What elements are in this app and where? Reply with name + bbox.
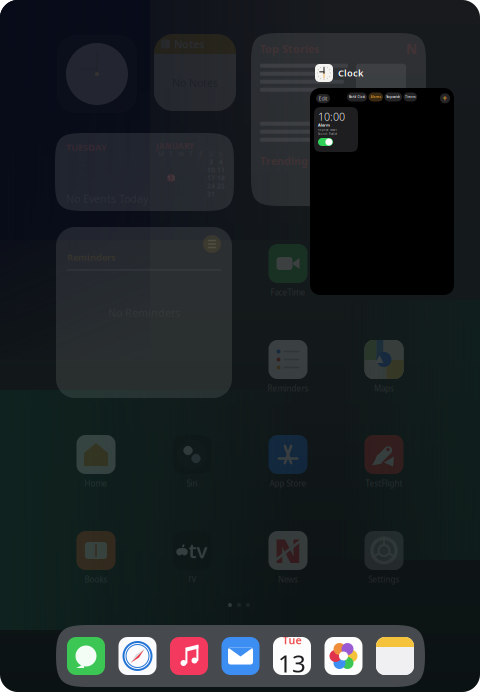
button[interactable]: N — [253, 531, 323, 585]
staticText: 13 — [167, 174, 175, 182]
button[interactable]: Books — [61, 531, 131, 585]
staticText: tv — [188, 537, 207, 564]
button[interactable]: Home — [61, 435, 131, 489]
staticText: Books — [84, 574, 107, 585]
button[interactable]: World Clock — [347, 92, 367, 101]
button[interactable]: Siri — [157, 435, 227, 489]
staticText: TestFlight — [365, 478, 402, 489]
button[interactable]: Settings — [349, 531, 419, 585]
staticText: No Events Today — [66, 191, 148, 206]
staticText: JANUARY — [156, 141, 194, 151]
staticText: World Clock — [348, 95, 365, 99]
button[interactable]: Edit — [316, 94, 330, 103]
button[interactable]: tv — [157, 531, 227, 585]
staticText: TV — [187, 574, 196, 585]
button[interactable]: Messages — [67, 637, 105, 675]
staticText: 24 — [207, 182, 215, 190]
staticText: 3 — [209, 158, 213, 166]
staticText: Home — [84, 478, 107, 489]
button[interactable]: Timers — [403, 92, 417, 101]
staticText: 25 — [217, 182, 225, 190]
staticText: Top Stories — [260, 42, 319, 56]
button[interactable]: Maps — [349, 340, 419, 394]
staticText: Settings — [368, 574, 399, 585]
staticText: 10:00 — [318, 109, 345, 124]
staticText: 31 — [207, 190, 215, 198]
staticText: Tue — [282, 633, 301, 647]
staticText: App Store — [269, 478, 306, 489]
staticText: Sound: Radial — [318, 132, 337, 136]
staticText: Notes — [174, 37, 204, 51]
button[interactable]: Clock — [310, 64, 363, 82]
staticText: N — [406, 40, 417, 58]
button[interactable]: Stopwatch — [384, 92, 402, 101]
button[interactable]: Alarms — [368, 92, 383, 101]
button[interactable]: App Store — [253, 435, 323, 489]
button[interactable]: Calendar — [273, 637, 311, 675]
staticText: Alarm — [318, 122, 330, 128]
button[interactable]: Add alarm — [440, 93, 450, 104]
staticText: Stopwatch — [386, 95, 400, 99]
staticText: 10 — [207, 166, 215, 174]
staticText: Trending — [260, 154, 308, 168]
staticText: 13 — [278, 647, 306, 679]
staticText: Reminders — [67, 251, 116, 263]
button[interactable]: Mail — [221, 637, 259, 675]
button[interactable]: Safari — [118, 637, 156, 675]
staticText: 4 — [219, 158, 223, 166]
staticText: Clock — [338, 67, 363, 79]
staticText: Reminders — [267, 383, 308, 394]
button[interactable]: Notes — [376, 637, 414, 675]
staticText: 17 — [207, 174, 215, 182]
button[interactable]: TestFlight — [349, 435, 419, 489]
button[interactable]: Music — [170, 637, 208, 675]
staticText: FaceTime — [270, 287, 305, 298]
button[interactable]: Reminders — [253, 340, 323, 394]
staticText: News — [278, 574, 298, 585]
button[interactable]: Photos — [324, 637, 362, 675]
staticText: Edit — [318, 95, 327, 102]
staticText: 18 — [217, 174, 225, 182]
staticText: 11 — [217, 166, 225, 174]
staticText: No Reminders — [108, 305, 180, 320]
staticText: Alarms — [371, 95, 381, 99]
staticText: TUESDAY — [66, 141, 107, 153]
staticText: M — [158, 150, 164, 158]
staticText: + — [442, 93, 447, 104]
staticText: Siri — [186, 478, 197, 489]
staticText: N — [274, 528, 302, 573]
staticText: Maps — [374, 383, 394, 394]
button[interactable]: FaceTime — [253, 244, 323, 298]
staticText: Repeat: Never — [318, 128, 337, 132]
staticText: Timers — [405, 95, 415, 99]
